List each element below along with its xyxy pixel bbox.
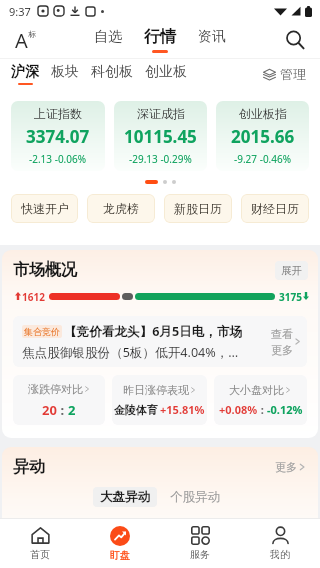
staticText: 龙虎榜: [103, 201, 139, 216]
staticText: 上证指数: [34, 106, 82, 121]
staticText: 2: [68, 401, 76, 419]
button[interactable]: 搜索: [282, 27, 308, 53]
staticText: 行情: [144, 27, 176, 47]
button[interactable]: 龙虎榜: [87, 194, 155, 223]
staticText: 昨日涨停表现: [123, 383, 189, 397]
staticText: 查看: [271, 327, 293, 341]
button[interactable]: 昨日涨停表现: [112, 375, 207, 425]
staticText: 市场概况: [13, 260, 77, 280]
button[interactable]: 大小盘对比: [214, 375, 307, 425]
button[interactable]: 字体大小: [12, 23, 39, 58]
staticText: 集合竞价: [24, 326, 60, 337]
button[interactable]: 科创板: [91, 63, 133, 85]
staticText: 1612: [22, 290, 45, 302]
staticText: 涨跌停对比: [28, 382, 83, 396]
button[interactable]: 集合竞价: [13, 316, 307, 367]
staticText: 更多: [275, 460, 297, 474]
staticText: +0.08%: [219, 402, 258, 417]
staticText: 沪深: [11, 63, 39, 81]
button[interactable]: 涨跌停对比: [13, 375, 105, 425]
staticText: -9.27 -0.46%: [234, 152, 292, 166]
staticText: :: [258, 402, 267, 417]
staticText: A: [15, 27, 28, 54]
button[interactable]: 资讯: [197, 28, 227, 52]
staticText: 3175: [279, 290, 302, 302]
button[interactable]: 深证成指: [114, 101, 207, 171]
staticText: 新股日历: [174, 201, 222, 216]
button[interactable]: 服务: [160, 519, 240, 568]
staticText: 10115.45: [124, 125, 197, 148]
staticText: -2.13 -0.06%: [29, 152, 87, 166]
staticText: 科创板: [91, 63, 133, 81]
button[interactable]: 创业板指: [216, 101, 309, 171]
staticText: 资讯: [198, 28, 226, 46]
button[interactable]: 展开: [275, 261, 308, 280]
staticText: -0.12%: [267, 402, 303, 417]
staticText: 管理: [280, 66, 306, 82]
staticText: 金陵体育: [114, 403, 158, 417]
staticText: 创业板: [145, 63, 187, 81]
staticText: 深证成指: [137, 106, 185, 121]
staticText: 财经日历: [251, 201, 299, 216]
staticText: +15.81%: [160, 402, 205, 417]
staticText: 大盘异动: [100, 489, 150, 505]
staticText: 【竞价看龙头】6月5日电，市场: [64, 323, 243, 340]
staticText: 更多: [271, 343, 293, 357]
staticText: 自选: [94, 28, 122, 46]
button[interactable]: 首页: [0, 519, 80, 568]
staticText: 快速开户: [21, 201, 69, 216]
staticText: 2015.66: [231, 125, 295, 148]
button[interactable]: 管理: [260, 63, 309, 85]
staticText: 标: [28, 29, 36, 39]
button[interactable]: 创业板: [145, 63, 187, 85]
button[interactable]: 快速开户: [11, 194, 78, 223]
button[interactable]: 盯盘: [80, 519, 160, 568]
staticText: 创业板指: [239, 106, 287, 121]
staticText: 我的: [270, 548, 290, 561]
button[interactable]: 板块: [51, 63, 79, 85]
button[interactable]: 更多: [275, 460, 307, 474]
staticText: 焦点股御银股份（5板）低开4.04%，…: [22, 344, 239, 361]
button[interactable]: 个股异动: [163, 487, 227, 507]
button[interactable]: 自选: [93, 28, 123, 52]
staticText: 20: [42, 401, 57, 419]
staticText: 服务: [190, 548, 210, 561]
button[interactable]: 新股日历: [164, 194, 232, 223]
staticText: 个股异动: [170, 489, 220, 505]
staticText: 板块: [51, 63, 79, 81]
staticText: :: [57, 401, 68, 419]
staticText: 异动: [13, 457, 45, 477]
staticText: 9:37: [9, 4, 31, 19]
staticText: 3374.07: [26, 125, 90, 148]
button[interactable]: 财经日历: [241, 194, 309, 223]
staticText: -29.13 -0.29%: [129, 152, 192, 166]
button[interactable]: 沪深: [11, 63, 39, 85]
staticText: 首页: [30, 548, 50, 561]
button[interactable]: 大盘异动: [93, 487, 157, 507]
button[interactable]: 行情: [143, 27, 177, 53]
button[interactable]: 上证指数: [11, 101, 105, 171]
staticText: 盯盘: [110, 549, 130, 562]
staticText: 展开: [281, 264, 302, 277]
staticText: 大小盘对比: [229, 383, 284, 397]
button[interactable]: 我的: [240, 519, 320, 568]
